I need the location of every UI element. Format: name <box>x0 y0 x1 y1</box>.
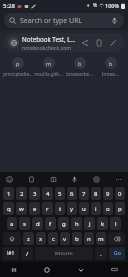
staticText: w <box>19 205 24 213</box>
staticText: Search or type URL <box>20 16 83 26</box>
button[interactable]: / <box>21 247 33 260</box>
button[interactable]: Home <box>39 262 55 277</box>
staticText: 7 <box>82 190 86 198</box>
button[interactable]: Clipboard <box>25 173 38 186</box>
staticText: z <box>27 235 30 243</box>
staticText: n <box>87 235 91 243</box>
staticText: / <box>26 250 29 258</box>
button[interactable]: Settings <box>90 173 103 186</box>
button[interactable]: Notebook Test, Lapto… <box>4 33 124 52</box>
button[interactable]: c <box>48 232 58 245</box>
button[interactable]: r <box>42 202 53 215</box>
button[interactable]: Voice search <box>110 16 119 25</box>
button[interactable]: 9 <box>103 187 113 200</box>
button[interactable]: b <box>64 56 95 78</box>
staticText: 1 <box>7 190 11 198</box>
button[interactable]: 0 <box>115 187 125 200</box>
button[interactable]: 5 <box>55 187 65 200</box>
button[interactable]: i <box>91 202 101 215</box>
button[interactable]: k <box>97 217 108 230</box>
button[interactable]: 8 <box>91 187 101 200</box>
button[interactable]: h <box>71 217 82 230</box>
button[interactable]: u <box>79 202 89 215</box>
button[interactable]: g <box>58 217 69 230</box>
staticText: notebookcheck.com <box>22 44 72 51</box>
button[interactable]: a <box>7 217 17 230</box>
staticText: j <box>89 220 91 228</box>
button[interactable]: . <box>95 247 107 260</box>
button[interactable]: 6 <box>67 187 77 200</box>
button[interactable]: f <box>45 217 56 230</box>
staticText: p <box>118 205 122 213</box>
staticText: m <box>46 60 52 67</box>
button[interactable]: 4 <box>42 187 53 200</box>
button[interactable]: Go <box>109 247 125 260</box>
button[interactable]: e <box>29 202 40 215</box>
button[interactable]: p <box>115 202 125 215</box>
button[interactable]: l <box>110 217 121 230</box>
staticText: 2 <box>20 190 24 198</box>
staticText: mozilla.gith… <box>34 71 63 77</box>
button[interactable]: b <box>95 56 126 78</box>
staticText: 8 <box>94 190 98 198</box>
button[interactable]: Copy <box>92 36 106 50</box>
staticText: 4 <box>46 190 50 198</box>
button[interactable]: y <box>67 202 77 215</box>
staticText: t <box>59 205 62 213</box>
button[interactable]: 2 <box>16 187 27 200</box>
button[interactable]: Backspace <box>108 232 125 245</box>
button[interactable]: GIF <box>47 173 60 186</box>
button[interactable]: Shift <box>3 232 21 245</box>
button[interactable]: 1 <box>3 187 14 200</box>
button[interactable]: z <box>23 232 34 245</box>
button[interactable]: d <box>32 217 43 230</box>
staticText: l <box>115 220 117 228</box>
button[interactable]: ENGLISH <box>35 247 93 260</box>
staticText: f <box>49 220 52 228</box>
button[interactable]: Share <box>78 36 92 50</box>
button[interactable]: w <box>16 202 27 215</box>
staticText: 3 <box>33 190 37 198</box>
staticText: s <box>23 220 26 228</box>
button[interactable]: 3 <box>29 187 40 200</box>
button[interactable]: Search or type URL <box>4 13 124 28</box>
staticText: v <box>63 235 67 243</box>
button[interactable]: b <box>72 232 82 245</box>
staticText: !#1 <box>7 250 15 257</box>
button[interactable]: o <box>103 202 113 215</box>
button[interactable]: p <box>2 56 33 78</box>
staticText: c <box>52 235 55 243</box>
button[interactable]: 7 <box>79 187 89 200</box>
button[interactable]: j <box>84 217 95 230</box>
button[interactable]: !#1 <box>3 247 19 260</box>
button[interactable]: v <box>60 232 70 245</box>
button[interactable]: n <box>84 232 94 245</box>
staticText: q <box>7 205 11 213</box>
staticText: principledte… <box>3 71 33 77</box>
button[interactable]: Emoji <box>3 173 16 186</box>
staticText: u <box>82 205 86 213</box>
staticText: a <box>10 220 14 228</box>
staticText: 5:28 <box>3 2 15 10</box>
button[interactable]: More options <box>112 173 125 186</box>
button[interactable]: x <box>36 232 46 245</box>
button[interactable]: Switch keyboard <box>106 262 122 277</box>
button[interactable]: Edit <box>106 36 120 50</box>
button[interactable]: m <box>33 56 64 78</box>
staticText: brows… <box>102 71 119 77</box>
button[interactable]: Voice input <box>68 173 81 186</box>
button[interactable]: Back <box>73 262 89 277</box>
button[interactable]: Recent apps <box>6 262 22 277</box>
staticText: y <box>70 205 74 213</box>
staticText: p <box>16 60 20 67</box>
button[interactable]: m <box>96 232 106 245</box>
staticText: Go <box>114 250 121 257</box>
staticText: % <box>93 2 98 9</box>
button[interactable]: s <box>19 217 30 230</box>
staticText: browserbe… <box>66 71 93 77</box>
staticText: g <box>62 220 66 228</box>
button[interactable]: q <box>3 202 14 215</box>
staticText: o <box>106 205 110 213</box>
staticText: b <box>78 60 82 67</box>
button[interactable]: t <box>55 202 65 215</box>
